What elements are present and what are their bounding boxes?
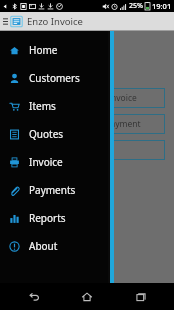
button[interactable]: Recent apps [121, 283, 161, 310]
staticText: 19:01 [152, 1, 172, 11]
button[interactable]: Back [14, 283, 54, 310]
staticText: New Invoice [88, 92, 137, 104]
button[interactable]: Items [0, 92, 108, 120]
staticText: Customers [29, 71, 80, 85]
button[interactable]: Customers [0, 64, 108, 92]
staticText: Invoice [29, 155, 63, 169]
staticText: 25% [129, 1, 143, 11]
button[interactable]: Reports [0, 204, 108, 232]
button[interactable]: Home [0, 36, 108, 64]
staticText: Enzo Invoice [27, 15, 83, 28]
button[interactable]: Quotes [0, 120, 108, 148]
staticText: Reports [29, 211, 66, 225]
staticText: Quotes [29, 127, 64, 141]
button[interactable]: New Invoice [60, 88, 165, 108]
button[interactable]: Invoice [0, 148, 108, 176]
button[interactable]: Open navigation drawer [1, 12, 9, 31]
staticText: Home [29, 43, 58, 57]
button[interactable]: New Payment [60, 114, 165, 134]
staticText: Items [29, 99, 56, 113]
button[interactable] [60, 140, 165, 160]
button[interactable]: About [0, 232, 108, 260]
staticText: New Payment [85, 118, 141, 130]
button[interactable]: Payments [0, 176, 108, 204]
staticText: About [29, 239, 58, 253]
staticText: Payments [29, 183, 76, 197]
button[interactable]: Home [67, 283, 107, 310]
